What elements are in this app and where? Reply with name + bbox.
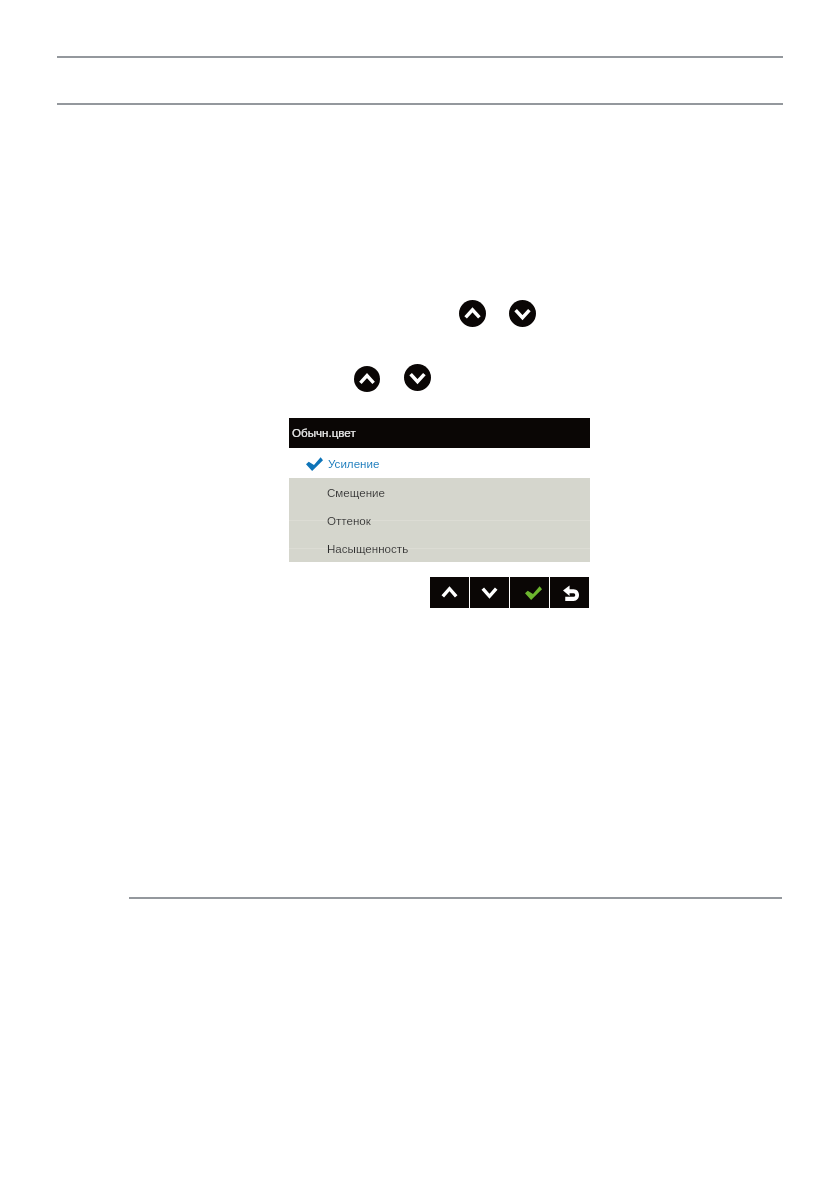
button[interactable]: Смещение xyxy=(289,478,590,506)
staticText: Насыщенность xyxy=(327,542,409,555)
button[interactable]: Насыщенность xyxy=(289,534,590,562)
staticText: Смещение xyxy=(327,486,385,499)
staticText: Оттенок xyxy=(327,514,371,527)
button[interactable]: Move up xyxy=(354,366,380,392)
button[interactable]: Оттенок xyxy=(289,506,590,534)
button[interactable]: Move down xyxy=(470,577,509,608)
staticText: Усиление xyxy=(328,457,380,470)
button[interactable]: Обычн.цвет xyxy=(289,418,590,448)
button[interactable]: Scroll down xyxy=(509,300,536,327)
button[interactable]: Move down xyxy=(404,364,431,391)
button[interactable]: Усиление xyxy=(289,448,590,478)
button[interactable]: Scroll up xyxy=(459,300,486,327)
button[interactable]: Back xyxy=(550,577,589,608)
button[interactable]: Move up xyxy=(430,577,469,608)
button[interactable]: Confirm xyxy=(510,577,549,608)
staticText: Обычн.цвет xyxy=(292,426,356,439)
